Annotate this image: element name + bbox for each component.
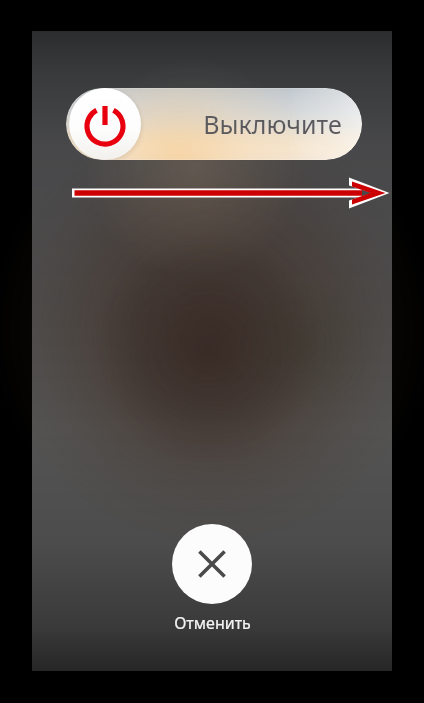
button[interactable]: Выключите (66, 88, 362, 160)
button[interactable]: Отменить (172, 524, 252, 604)
staticText: Выключите (203, 107, 342, 141)
staticText: Отменить (174, 612, 251, 634)
